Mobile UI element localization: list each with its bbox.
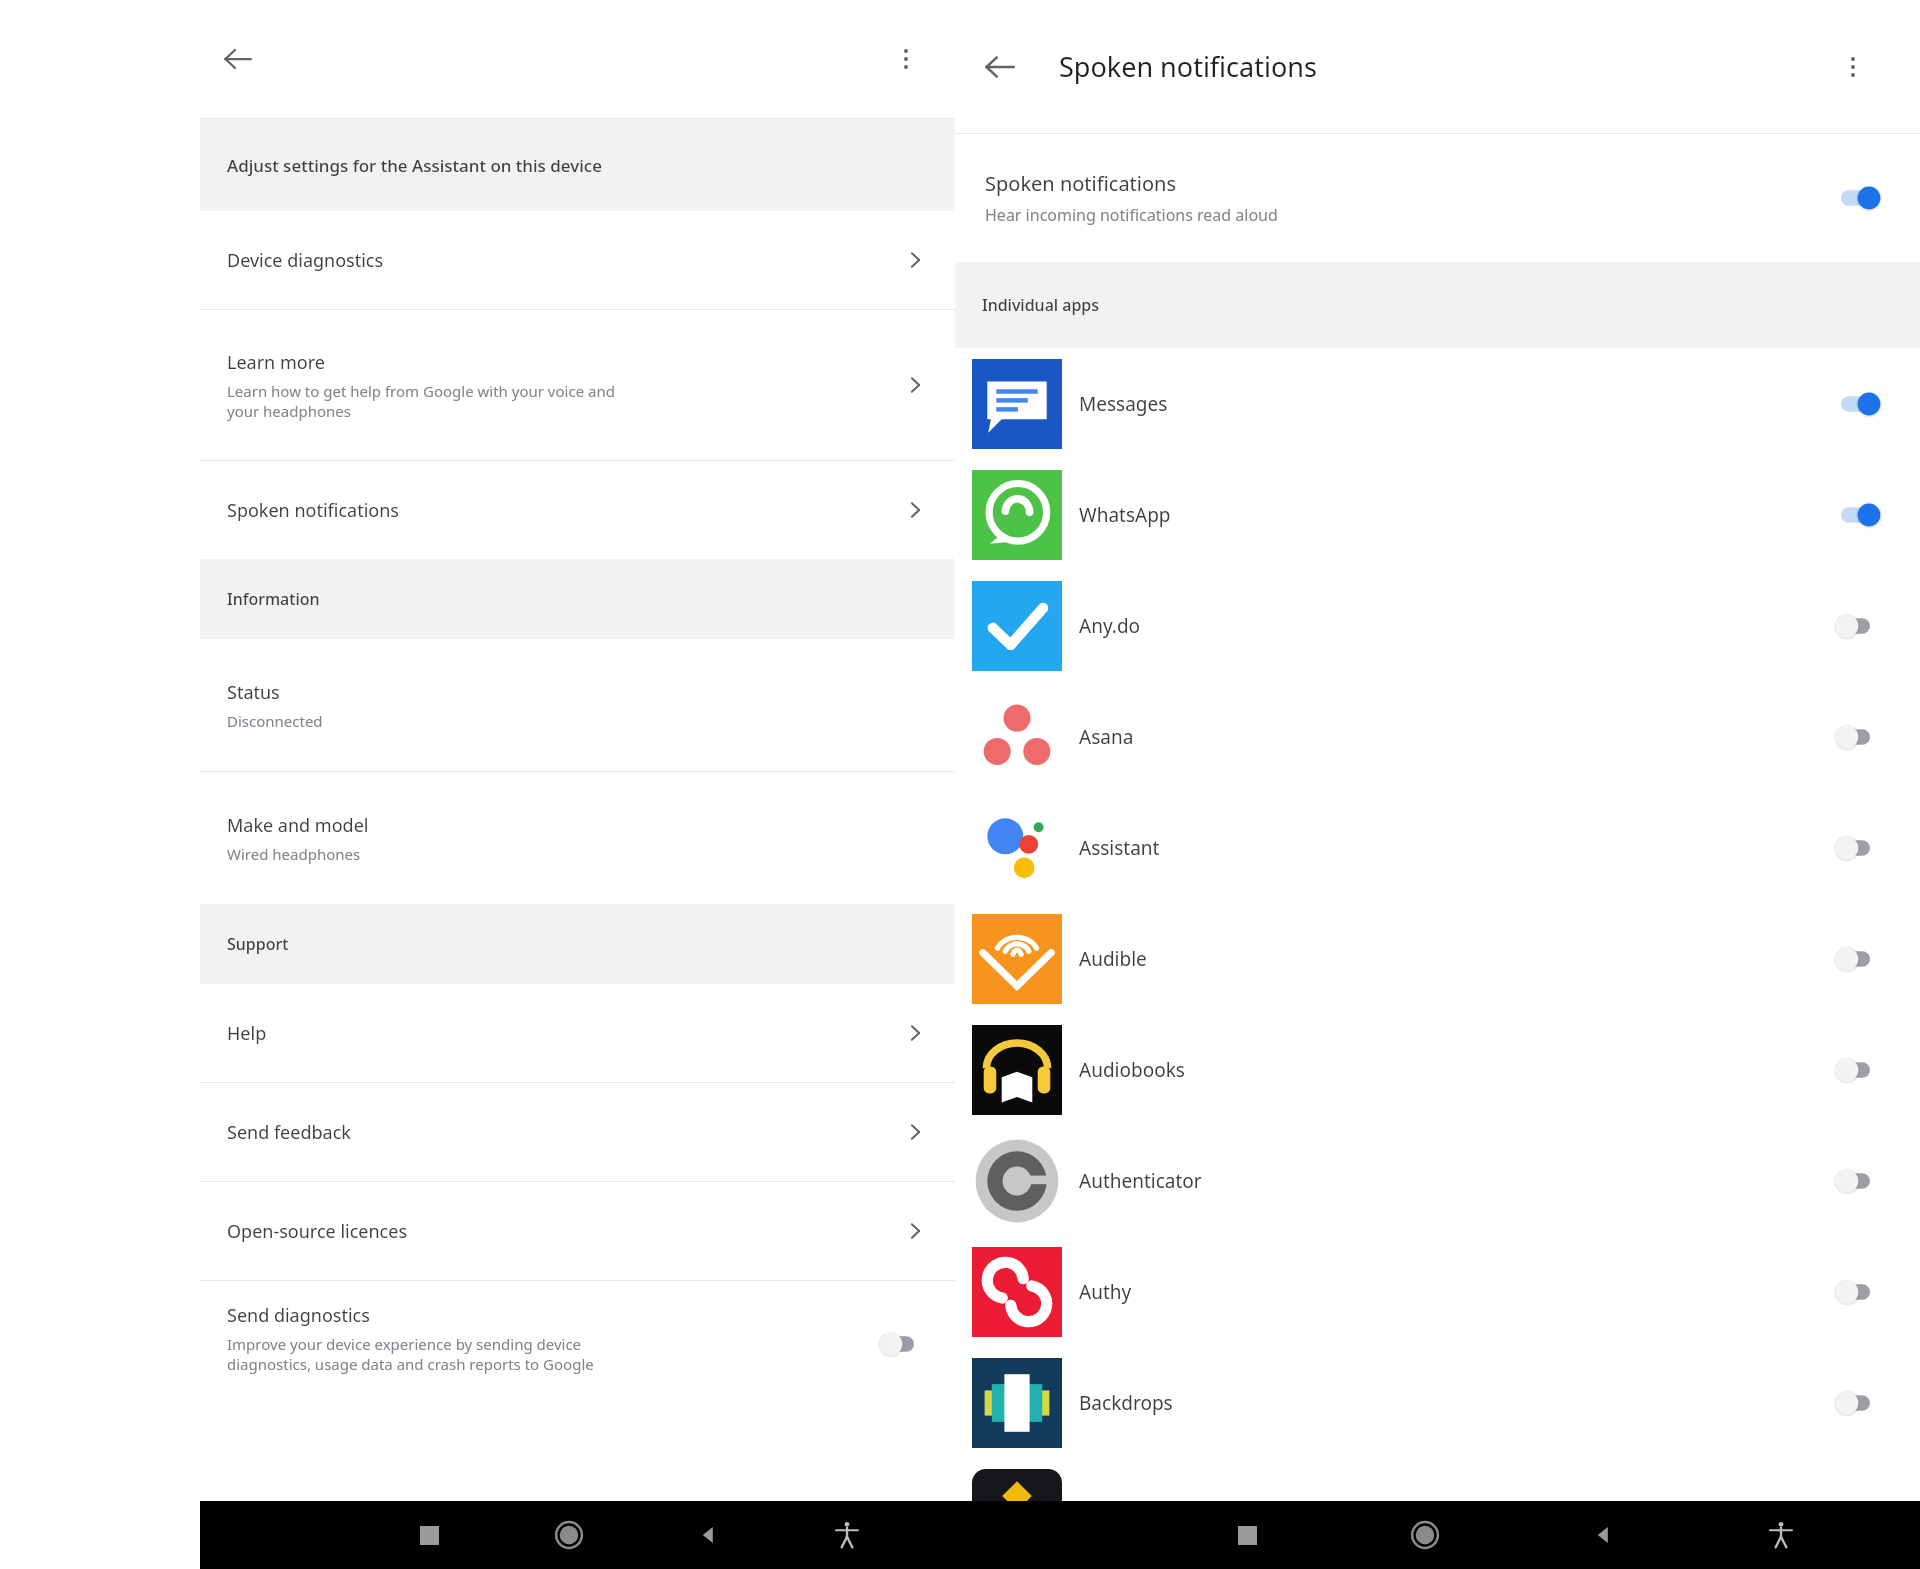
button[interactable]: Help xyxy=(200,984,955,1082)
button[interactable]: Send diagnostics xyxy=(200,1281,955,1569)
button[interactable]: Spoken notifications xyxy=(200,461,955,559)
button[interactable]: Accessibility xyxy=(1692,1501,1870,1569)
button[interactable]: Audible xyxy=(955,903,1920,1014)
button[interactable]: Learn more xyxy=(200,310,955,460)
staticText: Make and model xyxy=(227,813,369,838)
button[interactable]: Backdrops xyxy=(955,1347,1920,1458)
button[interactable]: WhatsApp xyxy=(955,459,1920,570)
button[interactable]: Authenticator xyxy=(955,1125,1920,1236)
button[interactable]: Recents xyxy=(1158,1501,1336,1569)
button[interactable]: Assistant xyxy=(955,792,1920,903)
button[interactable]: Home xyxy=(499,1501,638,1569)
staticText: Spoken notifications xyxy=(985,170,1177,197)
staticText: Any.do xyxy=(1079,613,1834,639)
staticText: Authenticator xyxy=(1079,1168,1834,1194)
staticText: Information xyxy=(227,588,320,610)
staticText: Audiobooks xyxy=(1079,1057,1834,1083)
staticText: Spoken notifications xyxy=(1059,48,1828,85)
button[interactable]: Send feedback xyxy=(200,1083,955,1181)
staticText: Send feedback xyxy=(227,1120,351,1145)
button[interactable]: Device diagnostics xyxy=(200,211,955,309)
button[interactable]: Recents xyxy=(360,1501,499,1569)
button[interactable]: Status xyxy=(200,639,955,771)
staticText: Open-source licences xyxy=(227,1219,407,1244)
button[interactable]: Back xyxy=(971,38,1029,96)
staticText: Support xyxy=(227,933,289,955)
staticText: Asana xyxy=(1079,724,1834,750)
button[interactable]: Back xyxy=(1514,1501,1692,1569)
staticText: Device diagnostics xyxy=(227,248,384,273)
staticText: Learn how to get help from Google with y… xyxy=(227,381,615,421)
staticText: Hear incoming notifications read aloud xyxy=(985,204,1278,226)
staticText: Status xyxy=(227,680,280,705)
staticText: Send diagnostics xyxy=(227,1303,370,1328)
staticText: Assistant xyxy=(1079,835,1834,861)
button[interactable]: Home xyxy=(1336,1501,1514,1569)
button[interactable]: Open-source licences xyxy=(200,1182,955,1280)
staticText: Improve your device experience by sendin… xyxy=(227,1334,594,1374)
button[interactable]: Make and model xyxy=(200,772,955,904)
staticText: Disconnected xyxy=(227,711,323,731)
staticText: Messages xyxy=(1079,391,1834,417)
button[interactable]: Accessibility xyxy=(777,1501,916,1569)
button[interactable]: Back xyxy=(210,31,266,87)
staticText: Binance xyxy=(1079,1501,1834,1527)
staticText: Backdrops xyxy=(1079,1390,1834,1416)
button[interactable]: Messages xyxy=(955,348,1920,459)
staticText: Individual apps xyxy=(982,294,1100,316)
staticText: Adjust settings for the Assistant on thi… xyxy=(227,154,602,177)
button[interactable]: Asana xyxy=(955,681,1920,792)
staticText: Authy xyxy=(1079,1279,1834,1305)
staticText: Spoken notifications xyxy=(227,498,399,523)
button[interactable]: Authy xyxy=(955,1236,1920,1347)
staticText: Audible xyxy=(1079,946,1834,972)
button[interactable]: Any.do xyxy=(955,570,1920,681)
button[interactable]: Back xyxy=(638,1501,777,1569)
button[interactable]: More options xyxy=(1828,42,1878,92)
staticText: WhatsApp xyxy=(1079,502,1834,528)
button[interactable]: Audiobooks xyxy=(955,1014,1920,1125)
staticText: Learn more xyxy=(227,350,325,375)
button[interactable]: Spoken notifications xyxy=(955,134,1920,262)
staticText: Wired headphones xyxy=(227,844,361,864)
button[interactable]: Binance xyxy=(955,1458,1920,1569)
button[interactable]: More options xyxy=(881,34,931,84)
staticText: Help xyxy=(227,1021,267,1046)
